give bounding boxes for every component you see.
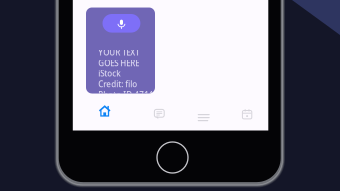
button[interactable]: Menu [182, 101, 226, 128]
button[interactable]: Messages [137, 99, 181, 126]
button[interactable]: Calendar [225, 100, 269, 127]
staticText: GOES HERE [98, 58, 139, 68]
staticText: iStock [98, 68, 120, 79]
button[interactable]: Record [102, 14, 140, 33]
staticText: Credit: filo [98, 79, 137, 89]
staticText: YOUR TEXT [98, 47, 139, 58]
staticText: Photo ID 4711 [98, 89, 154, 100]
button[interactable]: Home [83, 97, 127, 124]
